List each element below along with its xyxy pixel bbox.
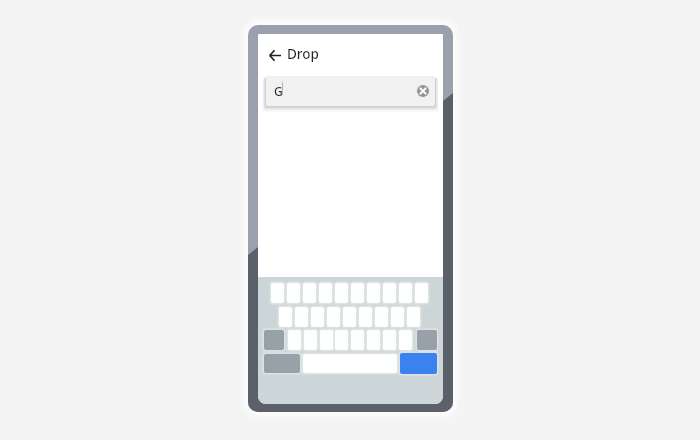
button[interactable]: Key xyxy=(264,354,300,373)
button[interactable]: Key xyxy=(417,330,437,350)
button[interactable]: Back xyxy=(264,44,286,66)
staticText: Drop xyxy=(287,45,319,63)
staticText: G xyxy=(274,83,283,99)
button[interactable]: Key xyxy=(264,330,284,350)
button[interactable]: Key xyxy=(400,353,437,374)
button[interactable]: G xyxy=(266,76,435,106)
button[interactable]: Clear search xyxy=(414,82,431,99)
button[interactable]: Drop xyxy=(287,43,327,65)
